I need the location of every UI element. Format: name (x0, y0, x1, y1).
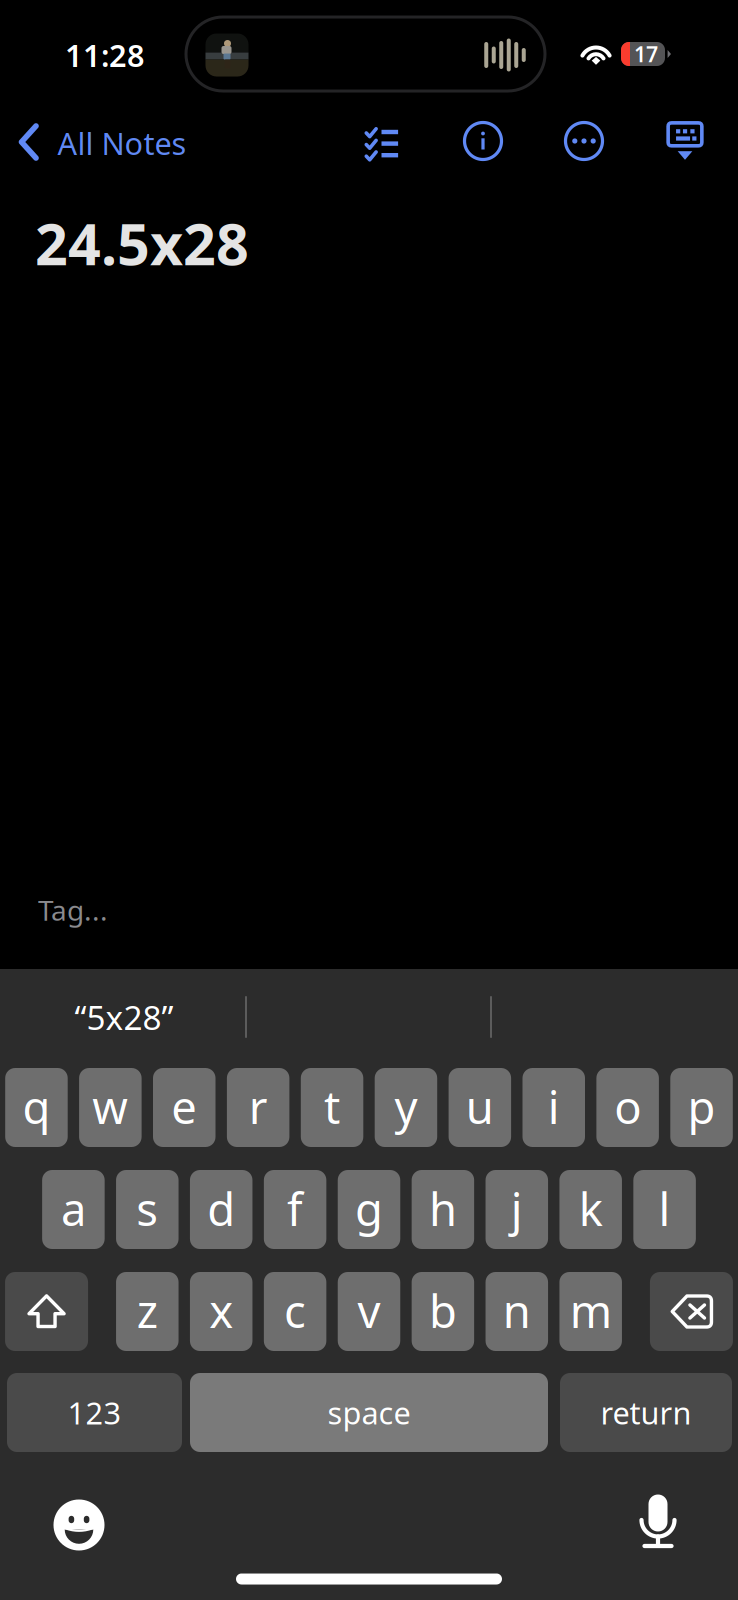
button[interactable]: z (116, 1272, 179, 1351)
button[interactable]: k (559, 1170, 622, 1249)
button[interactable]: o (596, 1068, 659, 1147)
staticText: n (503, 1280, 531, 1341)
button[interactable]: f (264, 1170, 326, 1249)
button[interactable]: b (412, 1272, 474, 1351)
staticText: i (548, 1076, 560, 1137)
staticText: x (209, 1280, 233, 1341)
button[interactable]: x (190, 1272, 252, 1351)
staticText: f (287, 1178, 303, 1239)
button[interactable]: e (153, 1068, 215, 1147)
button[interactable]: Dictate (626, 1490, 690, 1554)
button[interactable]: l (633, 1170, 696, 1249)
button[interactable]: i (522, 1068, 585, 1147)
staticText: d (207, 1178, 235, 1239)
button[interactable]: q (5, 1068, 68, 1147)
button[interactable]: space (190, 1373, 548, 1452)
button[interactable]: j (485, 1170, 548, 1249)
button[interactable]: d (190, 1170, 252, 1249)
staticText: Tag... (38, 891, 108, 929)
staticText: u (466, 1076, 494, 1137)
staticText: q (22, 1076, 50, 1137)
button[interactable]: More (553, 110, 614, 171)
button[interactable]: Checklist (352, 114, 411, 168)
button[interactable]: Delete (650, 1272, 733, 1351)
staticText: “5x28” (74, 995, 173, 1039)
staticText: l (659, 1178, 671, 1239)
button[interactable]: n (486, 1272, 548, 1351)
staticText: m (570, 1280, 612, 1341)
staticText: z (137, 1280, 158, 1341)
button[interactable]: Shift (5, 1272, 88, 1351)
button[interactable]: a (42, 1170, 105, 1249)
button[interactable]: 24.5x28 (0, 205, 738, 915)
staticText: o (614, 1076, 641, 1137)
staticText: a (61, 1178, 86, 1239)
staticText: b (429, 1280, 457, 1341)
button[interactable]: 123 (7, 1373, 182, 1452)
staticText: space (327, 1392, 410, 1433)
button[interactable]: Info (452, 110, 513, 171)
button[interactable]: c (264, 1272, 326, 1351)
staticText: k (579, 1178, 603, 1239)
button[interactable]: Hide Keyboard (656, 111, 714, 171)
staticText: h (429, 1178, 457, 1239)
staticText: s (136, 1178, 158, 1239)
button[interactable]: p (670, 1068, 733, 1147)
button[interactable]: s (116, 1170, 178, 1249)
button[interactable]: All Notes (9, 112, 194, 172)
staticText: j (511, 1178, 523, 1239)
staticText: r (249, 1076, 268, 1137)
staticText: 123 (67, 1392, 121, 1433)
button[interactable]: Emoji (47, 1493, 111, 1557)
button[interactable]: t (301, 1068, 363, 1147)
staticText: c (284, 1280, 306, 1341)
staticText: 24.5x28 (35, 205, 249, 281)
staticText: v (357, 1280, 380, 1341)
staticText: t (324, 1076, 340, 1137)
staticText: w (92, 1076, 128, 1137)
button[interactable]: r (227, 1068, 289, 1147)
staticText: All Notes (57, 123, 186, 163)
button[interactable]: y (375, 1068, 437, 1147)
button[interactable]: return (560, 1373, 732, 1452)
staticText: 11:28 (65, 35, 145, 75)
button[interactable]: “5x28” (24, 987, 224, 1047)
staticText: y (394, 1076, 417, 1137)
button[interactable]: w (79, 1068, 142, 1147)
button[interactable]: g (338, 1170, 400, 1249)
staticText: g (355, 1178, 383, 1239)
staticText: 17 (634, 40, 658, 68)
button[interactable]: h (412, 1170, 474, 1249)
staticText: p (687, 1076, 715, 1137)
button[interactable]: u (449, 1068, 511, 1147)
staticText: return (600, 1392, 691, 1433)
button[interactable]: m (559, 1272, 622, 1351)
staticText: e (171, 1076, 197, 1137)
button[interactable]: Tag... (0, 877, 738, 943)
button[interactable]: v (338, 1272, 400, 1351)
